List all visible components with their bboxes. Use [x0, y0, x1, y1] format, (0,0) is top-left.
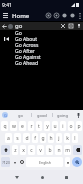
staticText: G — [4, 113, 7, 118]
button[interactable]: ?123 — [1, 157, 10, 167]
button[interactable]: y — [44, 121, 50, 131]
button[interactable]: More options — [76, 10, 83, 21]
staticText: b — [48, 147, 52, 154]
button[interactable]: f — [32, 133, 38, 143]
staticText: go — [18, 113, 23, 118]
button[interactable]: Profile — [60, 10, 68, 21]
staticText: o — [69, 123, 73, 130]
button[interactable]: g — [40, 133, 46, 143]
button[interactable]: b — [46, 145, 53, 155]
button[interactable]: Go After — [0, 48, 83, 54]
button[interactable]: go — [10, 110, 31, 120]
button[interactable]: Google — [0, 110, 10, 120]
button[interactable]: good — [31, 110, 52, 120]
button[interactable]: Search by image — [67, 22, 75, 30]
button[interactable]: Navigation menu — [0, 10, 11, 21]
staticText: English — [39, 160, 51, 165]
staticText: i — [62, 123, 64, 130]
button[interactable]: e — [19, 121, 26, 131]
button[interactable]: j — [56, 133, 62, 143]
staticText: Go After — [15, 48, 35, 54]
staticText: j — [58, 135, 60, 142]
button[interactable]: i — [60, 121, 66, 131]
button[interactable]: m — [64, 145, 71, 155]
button[interactable]: Comma — [12, 157, 17, 167]
staticText: v — [39, 147, 42, 154]
staticText: Go About — [15, 36, 38, 42]
staticText: Go Across — [15, 42, 39, 48]
button[interactable]: Shift — [1, 145, 10, 155]
button[interactable]: s — [14, 133, 21, 143]
staticText: z — [14, 147, 17, 154]
button[interactable]: English — [26, 157, 63, 167]
button[interactable]: Go Against — [0, 54, 83, 60]
button[interactable]: o — [68, 121, 74, 131]
button[interactable]: Account — [68, 10, 76, 21]
button[interactable]: d — [23, 133, 30, 143]
button[interactable]: Go — [0, 30, 83, 36]
staticText: t — [38, 123, 40, 130]
staticText: m — [65, 147, 70, 154]
button[interactable]: c — [28, 145, 35, 155]
button[interactable]: v — [37, 145, 44, 155]
staticText: ?123 — [2, 160, 10, 165]
button[interactable]: l — [72, 133, 78, 143]
button[interactable]: n — [55, 145, 62, 155]
button[interactable]: Search — [72, 157, 82, 167]
button[interactable]: t — [36, 121, 42, 131]
button[interactable]: Voice search — [75, 22, 83, 30]
button[interactable]: x — [20, 145, 26, 155]
button[interactable]: Emoji — [19, 157, 24, 167]
staticText: Go — [15, 30, 22, 36]
staticText: p — [77, 123, 81, 130]
staticText: k — [66, 135, 69, 142]
staticText: going — [57, 113, 68, 118]
staticText: u — [53, 123, 57, 130]
staticText: Go Against — [15, 54, 41, 60]
staticText: g — [41, 135, 45, 142]
button[interactable]: Back — [10, 170, 24, 184]
button[interactable]: Go Across — [0, 42, 83, 48]
staticText: 9:41 — [2, 2, 12, 9]
button[interactable]: z — [12, 145, 18, 155]
button[interactable]: Period — [65, 157, 70, 167]
staticText: y — [46, 123, 49, 130]
button[interactable]: p — [76, 121, 82, 131]
staticText: h — [49, 135, 53, 142]
button[interactable]: a — [5, 133, 12, 143]
staticText: go — [15, 22, 23, 30]
staticText: q — [3, 123, 7, 130]
button[interactable]: Recent apps — [59, 170, 73, 184]
staticText: Go Ahead — [15, 60, 38, 66]
button[interactable]: h — [48, 133, 54, 143]
staticText: f — [34, 135, 36, 142]
button[interactable]: r — [28, 121, 34, 131]
staticText: good — [37, 113, 47, 118]
staticText: c — [30, 147, 33, 154]
button[interactable]: w — [10, 121, 17, 131]
staticText: Home — [12, 12, 30, 20]
button[interactable]: Home — [35, 170, 49, 184]
button[interactable]: Voice input — [73, 110, 83, 120]
button[interactable]: Back — [0, 22, 8, 30]
button[interactable]: k — [64, 133, 70, 143]
staticText: n — [57, 147, 61, 154]
button[interactable]: Target — [52, 10, 60, 21]
button[interactable]: going — [52, 110, 73, 120]
staticText: s — [16, 135, 19, 142]
button[interactable]: u — [52, 121, 58, 131]
button[interactable]: Go Ahead — [0, 60, 83, 66]
staticText: w — [12, 123, 16, 130]
button[interactable]: Go About — [0, 36, 83, 42]
staticText: l — [74, 135, 76, 142]
button[interactable]: Backspace — [73, 145, 82, 155]
staticText: r — [30, 123, 33, 130]
staticText: x — [22, 147, 25, 154]
button[interactable]: q — [1, 121, 8, 131]
staticText: d — [25, 135, 29, 142]
button[interactable]: Clear search — [59, 22, 67, 30]
button[interactable]: Protection — [44, 10, 52, 21]
staticText: e — [21, 123, 24, 130]
staticText: a — [7, 135, 10, 142]
